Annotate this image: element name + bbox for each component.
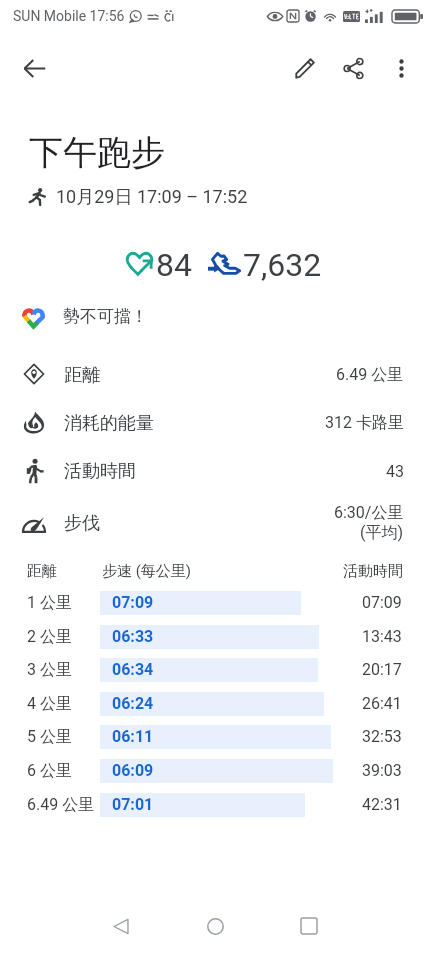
- staticText: 步速 (每公里): [102, 562, 192, 581]
- staticText: 84: [156, 246, 192, 284]
- staticText: 6:30/公里: [334, 503, 404, 523]
- button[interactable]: Back: [97, 902, 145, 950]
- staticText: 7,632: [243, 246, 322, 284]
- button[interactable]: 4 公里: [0, 687, 430, 721]
- staticText: 312 卡路里: [325, 413, 404, 433]
- staticText: 06:24: [112, 694, 154, 713]
- staticText: 32:53: [362, 727, 402, 746]
- button[interactable]: 消耗的能量: [0, 399, 430, 447]
- staticText: 20:17: [362, 660, 402, 679]
- staticText: 43: [386, 462, 404, 481]
- staticText: 勢不可擋！: [63, 306, 148, 327]
- staticText: 3 公里: [27, 660, 72, 680]
- staticText: 1 公里: [27, 593, 72, 613]
- staticText: 距離: [27, 562, 57, 581]
- button[interactable]: 3 公里: [0, 653, 430, 687]
- button[interactable]: 1 公里: [0, 586, 430, 620]
- button[interactable]: Share: [329, 44, 377, 92]
- staticText: 活動時間: [343, 562, 403, 581]
- staticText: (平均): [360, 523, 404, 543]
- staticText: 06:09: [112, 761, 154, 780]
- staticText: 距離: [64, 364, 100, 387]
- staticText: 10月29日 17:09 – 17:52: [56, 186, 248, 209]
- staticText: SUN Mobile 17:56: [13, 8, 125, 24]
- staticText: 06:34: [112, 660, 154, 679]
- button[interactable]: Back: [10, 44, 58, 92]
- button[interactable]: Home: [191, 902, 239, 950]
- staticText: 42:31: [362, 795, 402, 814]
- staticText: 2 公里: [27, 627, 72, 647]
- staticText: 下午跑步: [29, 131, 165, 174]
- staticText: 06:33: [112, 627, 154, 646]
- button[interactable]: Edit: [281, 44, 329, 92]
- staticText: 07:09: [362, 593, 402, 612]
- staticText: 07:01: [112, 795, 154, 814]
- button[interactable]: 2 公里: [0, 620, 430, 654]
- button[interactable]: Recents: [285, 902, 333, 950]
- button[interactable]: 活動時間: [0, 447, 430, 495]
- staticText: 6.49 公里: [27, 795, 95, 815]
- staticText: 06:11: [112, 727, 154, 746]
- staticText: 活動時間: [64, 460, 136, 483]
- button[interactable]: 6.49 公里: [0, 788, 430, 822]
- staticText: 5 公里: [27, 727, 72, 747]
- staticText: 39:03: [362, 761, 402, 780]
- button[interactable]: 距離: [0, 351, 430, 399]
- button[interactable]: 5 公里: [0, 720, 430, 754]
- button[interactable]: More options: [377, 44, 425, 92]
- button[interactable]: 6 公里: [0, 754, 430, 788]
- staticText: 26:41: [362, 694, 402, 713]
- staticText: 消耗的能量: [64, 412, 154, 435]
- staticText: 6.49 公里: [336, 365, 404, 385]
- button[interactable]: 步伐: [0, 499, 430, 547]
- staticText: 4 公里: [27, 694, 72, 714]
- staticText: 6 公里: [27, 761, 72, 781]
- staticText: 07:09: [112, 593, 154, 612]
- staticText: 13:43: [362, 627, 402, 646]
- staticText: 步伐: [64, 512, 100, 535]
